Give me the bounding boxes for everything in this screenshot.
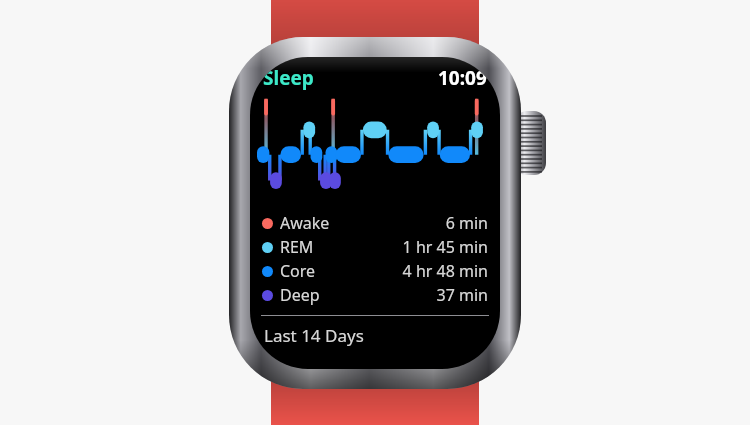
staticText: 37 min	[436, 284, 488, 306]
button[interactable]: REM	[262, 235, 488, 259]
staticText: 4 hr 48 min	[402, 260, 488, 282]
button[interactable]: Awake	[262, 211, 488, 235]
staticText: Core	[280, 260, 316, 282]
button[interactable]: Last 14 Days	[250, 324, 500, 347]
staticText: 10:09	[438, 65, 487, 91]
other: Sleep stages hypnogram chart	[257, 95, 495, 203]
staticText: Last 14 Days	[264, 324, 364, 347]
staticText: Awake	[280, 212, 330, 234]
staticText: Sleep	[263, 65, 314, 91]
button[interactable]: Core	[262, 259, 488, 283]
staticText: 1 hr 45 min	[402, 236, 488, 258]
staticText: REM	[280, 236, 314, 258]
staticText: 6 min	[445, 212, 488, 234]
button[interactable]: Deep	[262, 283, 488, 307]
staticText: Deep	[280, 284, 320, 306]
